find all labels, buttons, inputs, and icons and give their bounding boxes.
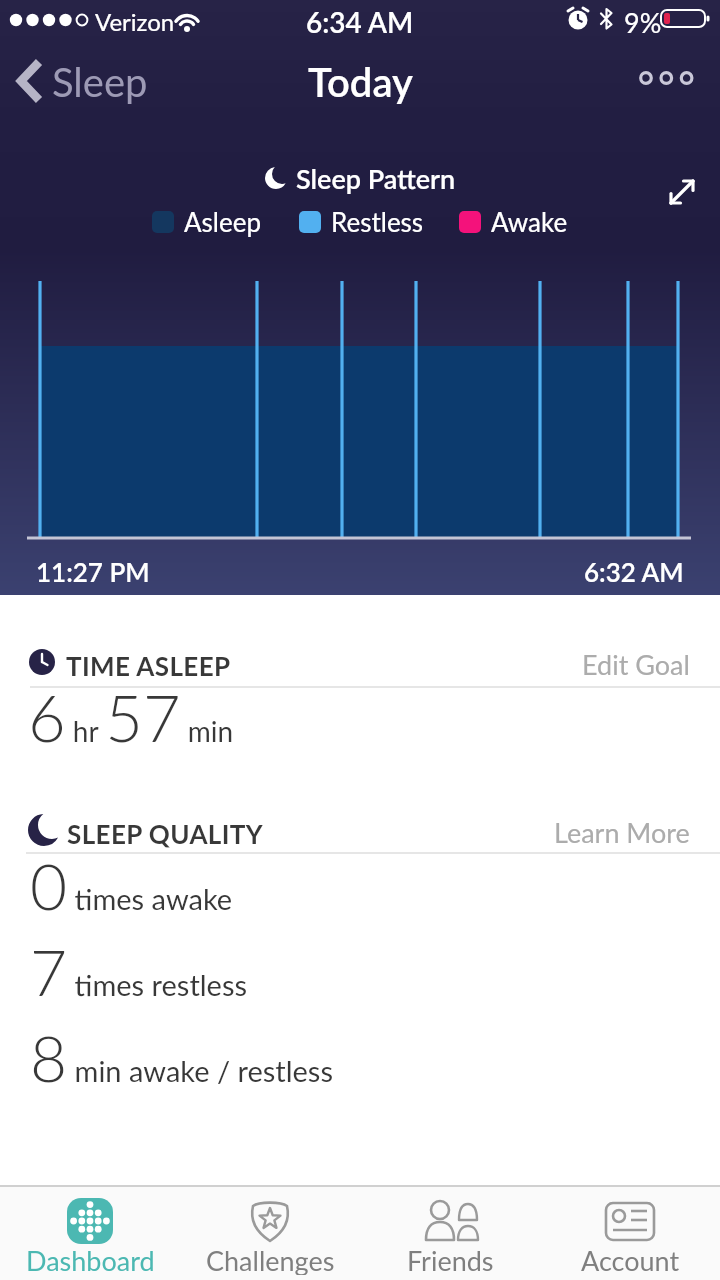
staticText: Awake [491,206,568,237]
staticText: 6 hr 57 min [28,678,234,756]
button[interactable]: Dashboard [0,1198,180,1280]
staticText: Challenges [206,1244,335,1275]
staticText: 6:34 AM [306,5,414,39]
button[interactable]: Challenges [180,1198,360,1280]
staticText: Today [308,58,413,106]
button[interactable] [634,66,698,90]
staticText: Friends [407,1244,494,1275]
staticText: Verizon [95,7,175,36]
staticText: 7 times restless [30,933,248,1010]
button[interactable]: Account [540,1198,720,1280]
button[interactable]: Learn More [554,816,690,848]
staticText: 11:27 PM [36,556,150,587]
button[interactable]: Edit Goal [582,648,690,680]
button[interactable]: Friends [360,1198,540,1280]
staticText: 8 min awake / restless [30,1019,333,1096]
staticText: Account [581,1244,680,1275]
staticText: TIME ASLEEP [66,650,231,681]
staticText: Asleep [184,206,262,237]
staticText: SLEEP QUALITY [67,818,264,849]
staticText: Restless [331,206,424,237]
staticText: Dashboard [26,1244,155,1275]
staticText: 9% [624,6,662,38]
button[interactable] [662,172,702,212]
button[interactable]: Sleep [52,58,148,106]
staticText: Sleep Pattern [296,162,456,194]
staticText: 6:32 AM [584,556,684,587]
staticText: 0 times awake [30,847,233,924]
button[interactable] [14,59,48,103]
